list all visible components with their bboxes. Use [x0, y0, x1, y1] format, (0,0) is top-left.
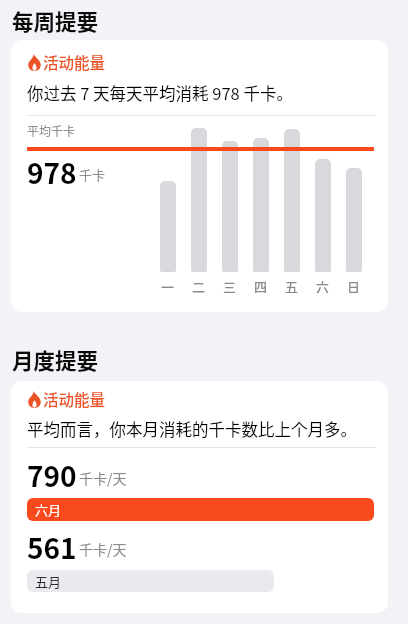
staticText: 五月	[35, 572, 62, 591]
button[interactable]: 活动能量	[11, 381, 388, 613]
staticText: 千卡/天	[79, 539, 127, 559]
staticText: 千卡/天	[79, 468, 127, 488]
staticText: 978	[27, 152, 77, 193]
staticText: 二	[192, 277, 206, 293]
staticText: 790	[27, 455, 77, 496]
staticText: 六	[316, 277, 330, 293]
staticText: 五	[285, 277, 299, 293]
staticText: 三	[223, 277, 237, 293]
staticText: 活动能量	[43, 51, 106, 73]
staticText: 活动能量	[43, 388, 106, 410]
staticText: 日	[347, 277, 361, 293]
staticText: 平均而言，你本月消耗的千卡数比上个月多。	[27, 417, 357, 441]
staticText: 平均千卡	[27, 122, 76, 139]
staticText: 561	[27, 527, 77, 568]
staticText: 四	[254, 277, 268, 293]
staticText: 月度提要	[12, 344, 99, 375]
staticText: 每周提要	[12, 5, 99, 36]
staticText: 六月	[35, 500, 62, 519]
staticText: 一	[161, 277, 175, 293]
staticText: 你过去 7 天每天平均消耗 978 千卡。	[27, 81, 293, 105]
button[interactable]: 活动能量	[11, 40, 388, 312]
staticText: 千卡	[79, 165, 106, 184]
